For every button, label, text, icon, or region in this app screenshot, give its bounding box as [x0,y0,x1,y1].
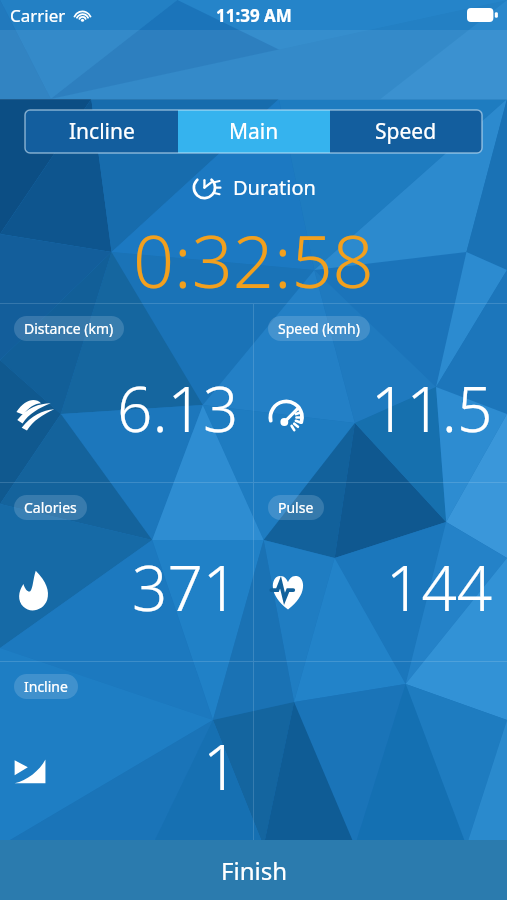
staticText: Carrier [10,4,66,27]
button[interactable]: Incline [0,662,253,840]
button[interactable]: Distance (km) [0,304,253,482]
staticText: Speed [375,117,437,146]
staticText: 6.13 [117,366,239,450]
staticText: 144 [386,545,493,629]
staticText: Incline [69,117,135,146]
staticText: 11.5 [371,366,493,450]
staticText: Incline [24,677,68,696]
staticText: Main [229,117,279,146]
button[interactable]: Incline [25,110,178,153]
staticText: 11:39 AM [216,4,292,27]
staticText: Pulse [278,498,314,517]
staticText: Duration [233,174,316,201]
staticText: 371 [132,545,239,629]
button[interactable]: Speed [330,110,482,153]
staticText: 0:32:58 [133,211,374,303]
button[interactable]: Speed (kmh) [254,304,507,482]
staticText: Finish [221,854,287,887]
staticText: Calories [24,498,77,517]
staticText: Distance (km) [24,319,114,338]
staticText: 1 [203,724,239,808]
button[interactable]: Main [178,110,330,153]
button[interactable]: Calories [0,483,253,661]
button[interactable]: Finish [0,840,507,900]
button[interactable]: Pulse [254,483,507,661]
staticText: Speed (kmh) [278,319,360,338]
